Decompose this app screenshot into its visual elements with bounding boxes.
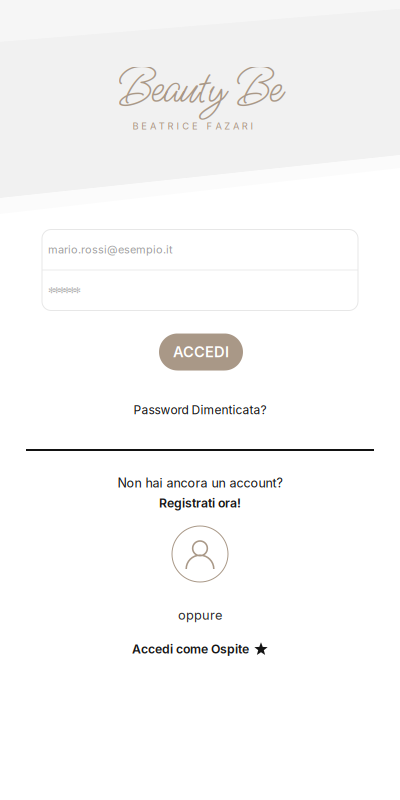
- button[interactable]: Registrati ora!: [150, 493, 250, 513]
- staticText: ACCEDI: [173, 343, 229, 361]
- staticText: T: [159, 120, 165, 132]
- staticText: mario.rossi@esempio.it: [48, 243, 173, 256]
- staticText: I: [251, 120, 254, 132]
- staticText: A: [215, 120, 221, 132]
- staticText: Beauty Be: [118, 56, 282, 121]
- staticText: ✻✻✻✻✻✻: [48, 286, 81, 295]
- staticText: Accedi come Ospite: [132, 642, 249, 656]
- staticText: R: [168, 120, 174, 132]
- staticText: A: [150, 120, 156, 132]
- staticText: Password Dimenticata?: [133, 403, 266, 417]
- staticText: Registrati ora!: [159, 496, 241, 510]
- staticText: I: [176, 120, 179, 132]
- staticText: Z: [224, 120, 230, 132]
- staticText: Non hai ancora un account?: [117, 475, 282, 491]
- staticText: oppure: [178, 607, 222, 623]
- button[interactable]: Registrati: [172, 526, 228, 582]
- staticText: E: [141, 120, 147, 132]
- button[interactable]: Accedi come Ospite: [132, 638, 268, 660]
- staticText: B: [132, 120, 138, 132]
- staticText: R: [242, 120, 248, 132]
- button[interactable]: Password Dimenticata?: [110, 399, 290, 421]
- staticText: C: [182, 120, 189, 132]
- staticText: E: [192, 120, 198, 132]
- staticText: A: [233, 120, 239, 132]
- button[interactable]: ACCEDI: [159, 333, 243, 370]
- staticText: F: [207, 120, 213, 132]
